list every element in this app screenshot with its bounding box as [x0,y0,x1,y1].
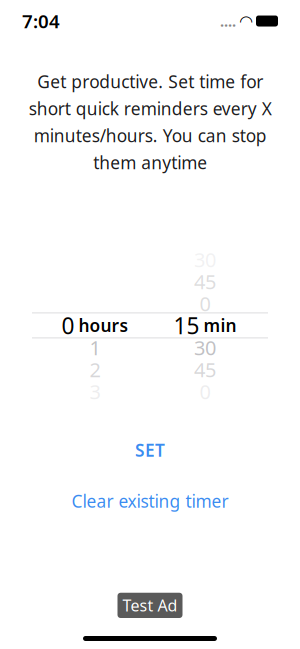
staticText: min [203,314,236,337]
button[interactable]: SET [0,432,300,467]
staticText: Test Ad [122,595,177,616]
staticText: hours [78,314,128,337]
staticText: SET [135,438,165,461]
staticText: 15 [173,310,199,340]
staticText: ◠ [240,12,252,30]
staticText: 30 [194,334,216,361]
staticText: 0 [61,310,74,340]
staticText: 3 [89,378,100,405]
staticText: 7:04 [22,9,60,33]
staticText: 1 [89,334,100,361]
staticText: Clear existing timer [71,489,228,512]
button[interactable]: Clear existing timer [0,483,300,518]
staticText: 45 [194,268,216,295]
staticText: Get productive. Set time for short quick… [28,70,271,174]
staticText: 45 [194,356,216,383]
staticText: 30 [194,246,216,273]
staticText: 2 [89,356,100,383]
staticText: 0 [199,290,210,317]
staticText: .... [220,11,236,31]
staticText: 0 [199,378,210,405]
